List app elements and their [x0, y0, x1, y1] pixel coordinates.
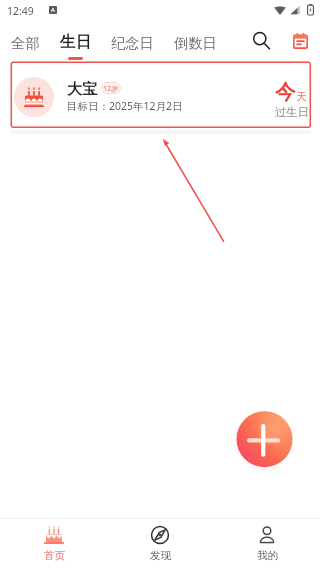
button[interactable]: 日历: [281, 20, 319, 62]
button[interactable]: 我的: [214, 519, 320, 568]
staticText: 全部: [11, 34, 40, 52]
staticText: 目标日：2025年12月2日: [67, 99, 183, 113]
staticText: 过生日: [275, 105, 309, 119]
button[interactable]: 搜索: [242, 19, 280, 61]
staticText: 12岁: [103, 83, 119, 93]
staticText: 大宝: [67, 80, 97, 99]
button[interactable]: 纪念日: [101, 20, 164, 62]
button[interactable]: 生日: [50, 20, 101, 62]
button[interactable]: 添加: [228, 404, 300, 476]
staticText: 今: [275, 79, 296, 105]
staticText: 天: [296, 90, 307, 103]
button[interactable]: 大宝: [11, 62, 311, 127]
staticText: A: [51, 6, 55, 14]
staticText: 我的: [257, 549, 278, 562]
staticText: 生日: [60, 32, 91, 52]
staticText: 倒数日: [174, 34, 217, 52]
staticText: 12:49: [7, 4, 34, 18]
button[interactable]: 全部: [1, 20, 50, 62]
button[interactable]: 倒数日: [164, 20, 227, 62]
staticText: 纪念日: [111, 34, 154, 52]
button[interactable]: 首页: [1, 519, 107, 568]
button[interactable]: 发现: [107, 519, 213, 568]
staticText: 发现: [150, 549, 171, 562]
staticText: 首页: [44, 549, 65, 562]
